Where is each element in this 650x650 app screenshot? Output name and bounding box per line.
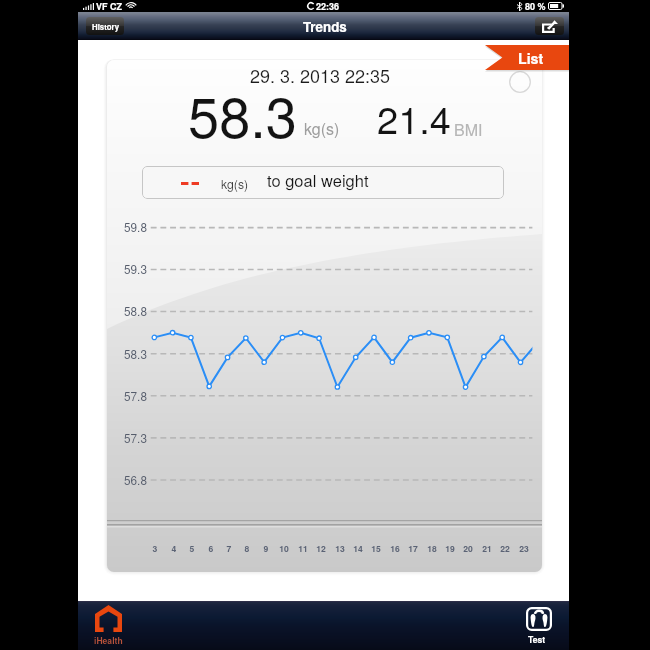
staticText: List [518,48,544,68]
staticText: 4 [164,542,184,554]
staticText: 22:36 [316,0,340,12]
staticText: 11 [293,542,313,554]
staticText: 7 [219,542,239,554]
staticText: 21 [477,542,497,554]
staticText: 13 [330,542,350,554]
staticText: 29. 3. 2013 22:35 [250,62,391,88]
staticText: 21.4 [377,90,451,144]
staticText: 10 [274,542,294,554]
staticText: 8 [237,542,257,554]
button[interactable]: History [86,17,124,35]
staticText: 56.8 [124,471,154,488]
staticText: 19 [440,542,460,554]
button[interactable]: iHealth [92,602,125,647]
staticText: 58.3 [124,345,154,362]
staticText: Trends [303,17,347,36]
staticText: 58.8 [124,302,154,319]
staticText: 6 [201,542,221,554]
staticText: 20 [458,542,478,554]
staticText: 23 [514,542,534,554]
staticText: iHealth [94,634,123,646]
staticText: kg(s) [221,175,249,193]
staticText: 59.8 [124,218,154,235]
staticText: 5 [182,542,202,554]
button[interactable]: Share [535,17,564,35]
staticText: 12 [311,542,331,554]
staticText: 9 [256,542,276,554]
staticText: 17 [403,542,423,554]
staticText: 57.8 [124,387,154,404]
button[interactable]: List [485,45,569,70]
staticText: 57.3 [124,429,154,446]
staticText: 18 [422,542,442,554]
button[interactable]: kg(s) [142,166,504,199]
staticText: 15 [366,542,386,554]
staticText: 59.3 [124,260,154,277]
staticText: History [92,21,119,32]
button[interactable]: Test [524,602,554,647]
staticText: to goal weight [267,168,369,192]
staticText: 3 [145,542,165,554]
staticText: Test [528,633,546,645]
staticText: BMI [454,118,483,141]
staticText: kg(s) [304,117,340,140]
staticText: 14 [348,542,368,554]
staticText: 22 [495,542,515,554]
staticText: 58.3 [188,74,297,154]
staticText: 16 [385,542,405,554]
staticText: VF CZ [96,0,123,12]
staticText: 80 % [525,0,546,12]
